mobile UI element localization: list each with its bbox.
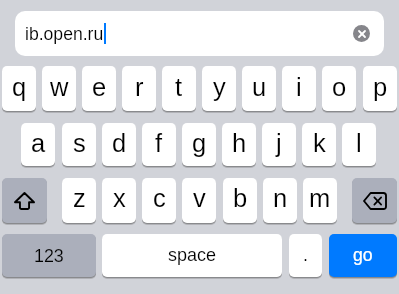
button[interactable]: q [2,66,36,111]
button[interactable]: p [363,66,397,111]
button[interactable]: x [102,178,136,223]
staticText: v [193,184,206,212]
button[interactable]: j [262,123,296,166]
button[interactable]: w [42,66,76,111]
button[interactable]: m [303,178,337,223]
staticText: z [73,184,86,212]
button[interactable]: l [342,123,376,166]
button[interactable]: space [102,234,282,277]
staticText: e [92,73,107,101]
staticText: d [112,129,127,157]
staticText: s [73,129,86,157]
button[interactable]: r [122,66,156,111]
staticText: h [232,129,247,157]
button[interactable]: u [242,66,276,111]
button[interactable]: ib.open.ru [15,11,384,56]
button[interactable]: a [21,123,55,166]
button[interactable]: b [223,178,257,223]
staticText: m [309,184,331,212]
button[interactable]: d [102,123,136,166]
staticText: p [373,73,388,101]
button[interactable]: c [142,178,176,223]
button[interactable]: 123 [2,234,96,277]
staticText: a [31,129,46,157]
button[interactable]: f [142,123,176,166]
button[interactable]: k [302,123,336,166]
staticText: i [296,73,302,101]
button[interactable]: Backspace [352,178,397,223]
staticText: space [168,245,217,265]
button[interactable]: s [62,123,96,166]
staticText: c [153,184,166,212]
button[interactable]: t [162,66,196,111]
staticText: r [135,73,144,101]
staticText: x [113,184,126,212]
staticText: 123 [34,246,64,266]
button[interactable]: z [62,178,96,223]
staticText: b [233,184,248,212]
button[interactable]: i [282,66,316,111]
staticText: t [175,73,183,101]
button[interactable]: Clear text [353,25,370,42]
staticText: q [12,73,27,101]
staticText: f [155,129,163,157]
staticText: l [356,129,362,157]
staticText: ib.open.ru [25,24,104,44]
button[interactable]: o [322,66,356,111]
button[interactable]: g [182,123,216,166]
staticText: j [276,129,282,157]
button[interactable]: y [202,66,236,111]
staticText: n [273,184,288,212]
staticText: g [192,129,207,157]
button[interactable]: e [82,66,116,111]
staticText: go [353,245,373,265]
button[interactable]: go [329,234,397,277]
staticText: u [252,73,267,101]
button[interactable]: v [182,178,216,223]
staticText: o [332,73,347,101]
button[interactable]: h [222,123,256,166]
staticText: y [213,73,226,101]
button[interactable]: Shift [2,178,47,223]
button[interactable]: n [263,178,297,223]
staticText: k [313,129,326,157]
button[interactable]: . [289,234,322,277]
staticText: w [50,73,69,101]
staticText: . [303,245,309,265]
